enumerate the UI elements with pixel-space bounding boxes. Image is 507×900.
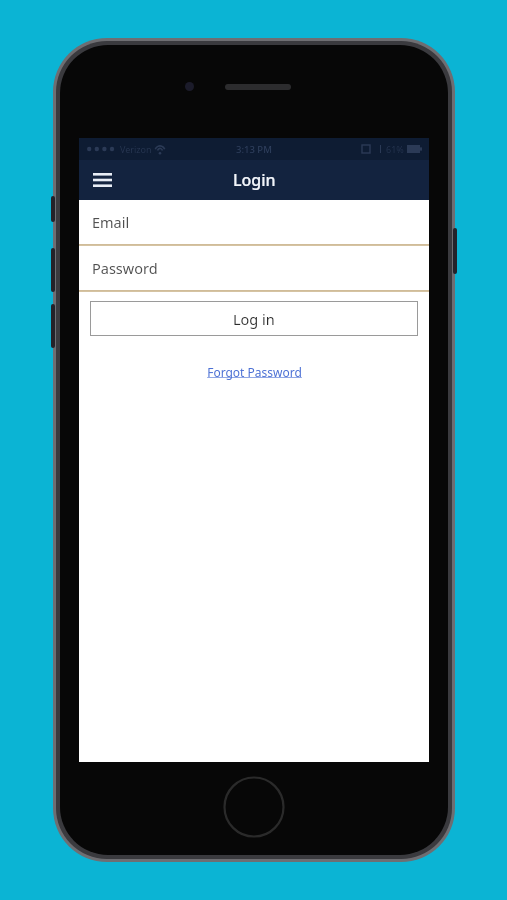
staticText: Verizon [120, 143, 152, 155]
button[interactable]: Password [79, 246, 429, 290]
button[interactable]: Log in [90, 301, 418, 336]
staticText: Password [92, 258, 158, 278]
staticText: Log in [233, 309, 275, 329]
staticText: 61% [386, 143, 404, 155]
button[interactable]: Forgot Password [199, 361, 310, 383]
staticText: Forgot Password [207, 364, 302, 380]
staticText: Login [233, 169, 276, 191]
staticText: Email [92, 212, 130, 232]
staticText: 3:13 PM [236, 143, 272, 156]
button[interactable]: Open navigation menu [87, 165, 117, 195]
button[interactable]: Email [79, 200, 429, 244]
